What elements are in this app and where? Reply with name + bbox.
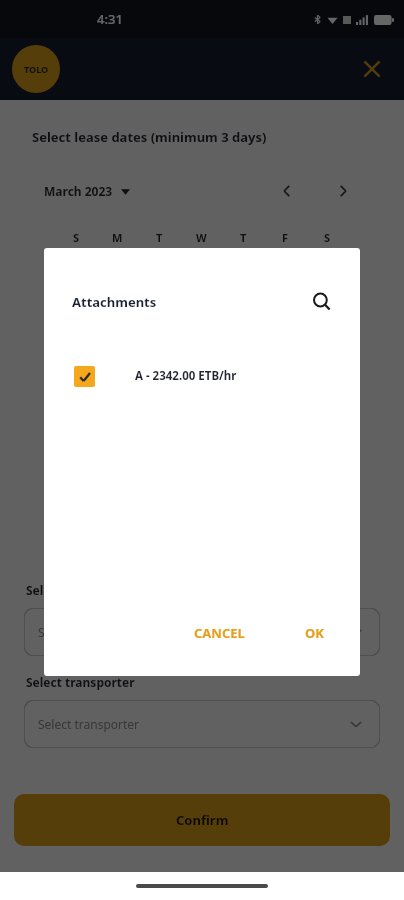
staticText: W (196, 230, 207, 245)
staticText: F (282, 230, 289, 245)
button[interactable]: Select transporter (24, 700, 380, 748)
staticText: 4:31 (97, 10, 123, 28)
button[interactable]: Confirm (14, 794, 390, 846)
button[interactable]: CANCEL (182, 616, 257, 650)
staticText: T (156, 230, 163, 245)
button[interactable]: Select attachments (24, 608, 380, 656)
button[interactable]: Previous month (270, 174, 304, 208)
button[interactable]: A - 2342.00 ETB/hr (44, 356, 360, 396)
staticText: S (73, 230, 80, 245)
button[interactable]: Search (304, 284, 340, 320)
staticText: March 2023 (44, 183, 113, 199)
staticText: TOLO (24, 63, 49, 75)
staticText: M (112, 230, 123, 245)
staticText: Select attachments (26, 582, 142, 598)
staticText: Select transporter (38, 716, 140, 732)
staticText: S (324, 230, 331, 245)
button[interactable]: March 2023 (44, 183, 130, 199)
staticText: Select transporter (26, 674, 135, 690)
button[interactable]: Next month (326, 174, 360, 208)
staticText: CANCEL (194, 624, 245, 642)
staticText: Attachments (72, 293, 157, 311)
button[interactable]: Close (352, 49, 392, 89)
button[interactable]: TOLO (12, 45, 60, 93)
staticText: T (240, 230, 247, 245)
staticText: OK (305, 624, 324, 642)
staticText: Confirm (176, 811, 229, 829)
staticText: Select attachments (38, 624, 146, 640)
staticText: Select lease dates (minimum 3 days) (32, 128, 267, 146)
staticText: A - 2342.00 ETB/hr (135, 368, 237, 384)
button[interactable]: OK (293, 616, 336, 650)
